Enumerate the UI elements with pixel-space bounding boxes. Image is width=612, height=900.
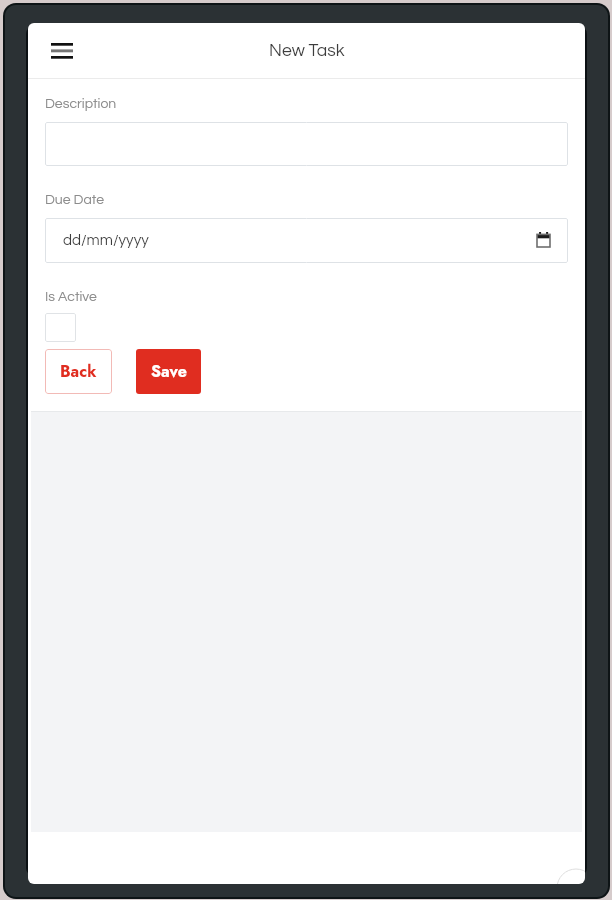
staticText: Due Date <box>45 193 104 207</box>
button[interactable]: Is Active checkbox <box>45 313 76 342</box>
button[interactable]: Save <box>136 349 201 394</box>
button[interactable]: Back <box>45 349 112 394</box>
staticText: New Task <box>269 42 345 60</box>
staticText: Back <box>60 360 97 383</box>
staticText: dd/mm/yyyy <box>63 233 149 249</box>
staticText: Description <box>45 97 117 111</box>
button[interactable]: Pick a date <box>533 229 553 249</box>
button[interactable]: Open navigation menu <box>45 33 79 69</box>
button[interactable]: Description field <box>45 122 568 166</box>
staticText: Is Active <box>45 290 97 304</box>
button[interactable]: dd/mm/yyyy <box>45 218 568 263</box>
staticText: Save <box>151 360 187 383</box>
